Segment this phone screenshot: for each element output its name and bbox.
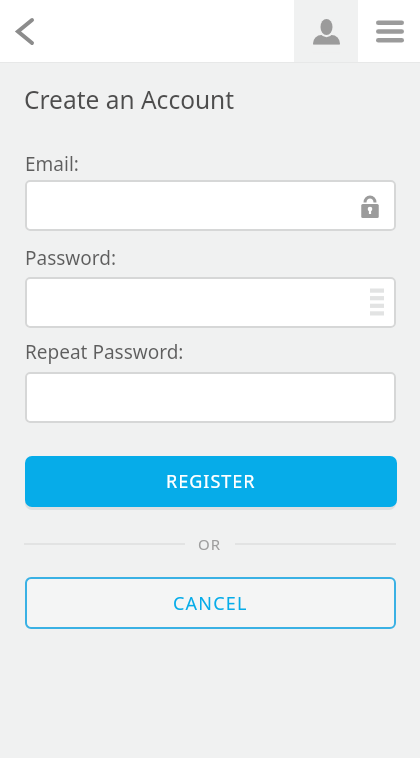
staticText: Create an Account bbox=[24, 83, 235, 116]
button[interactable] bbox=[358, 0, 420, 62]
staticText: CANCEL bbox=[173, 591, 248, 616]
button[interactable] bbox=[0, 0, 62, 62]
staticText: OR bbox=[198, 534, 222, 554]
button[interactable]: CANCEL bbox=[25, 577, 396, 629]
button[interactable] bbox=[294, 0, 358, 62]
button[interactable] bbox=[25, 277, 396, 328]
staticText: Repeat Password: bbox=[25, 339, 184, 365]
button[interactable]: REGISTER bbox=[25, 456, 397, 507]
staticText: REGISTER bbox=[166, 469, 256, 494]
staticText: Password: bbox=[25, 245, 117, 271]
button[interactable] bbox=[25, 180, 396, 231]
staticText: Email: bbox=[25, 151, 79, 177]
button[interactable] bbox=[25, 372, 396, 423]
